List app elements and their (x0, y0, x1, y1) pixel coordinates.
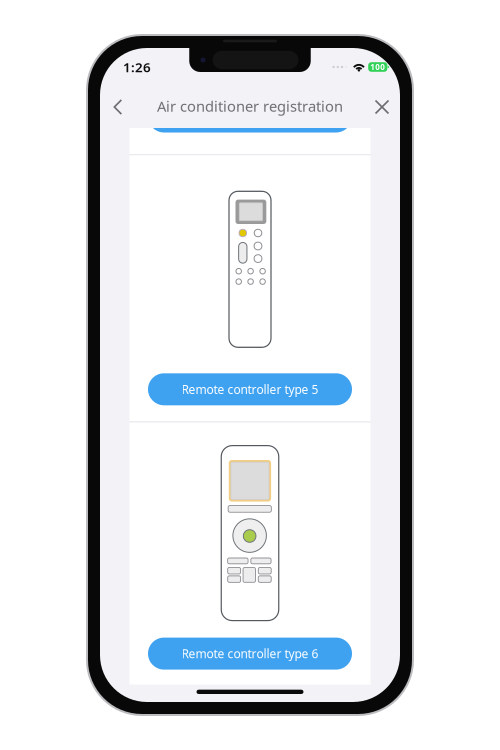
staticText: Remote controller type 5 (181, 381, 318, 397)
staticText: Remote controller type 4 (181, 108, 318, 124)
button[interactable]: Remote controller type 4 (148, 100, 352, 132)
button[interactable]: Back (102, 91, 134, 123)
button[interactable]: Remote controller type 5 (148, 373, 352, 405)
staticText: 100 (370, 62, 385, 72)
staticText: Remote controller type 6 (181, 646, 318, 661)
button[interactable]: Remote controller type 6 (148, 638, 352, 670)
button[interactable]: Close (366, 91, 398, 123)
staticText: 1:26 (123, 58, 151, 76)
staticText: Air conditioner registration (157, 96, 343, 116)
